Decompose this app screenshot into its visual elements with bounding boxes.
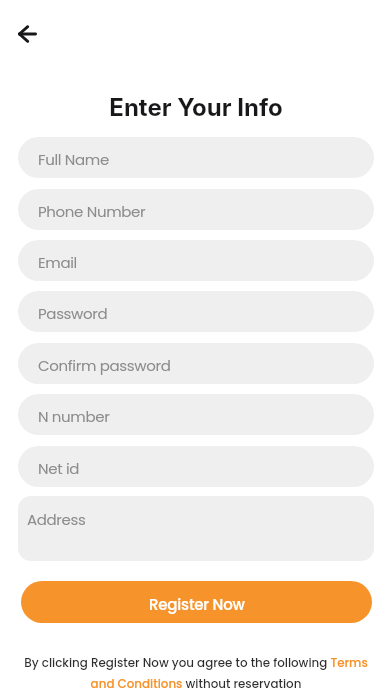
staticText: Net id	[38, 458, 80, 479]
staticText: N number	[38, 406, 110, 427]
staticText: Register Now	[149, 594, 245, 615]
staticText: Confirm password	[38, 355, 171, 376]
button[interactable]: N number	[18, 394, 374, 435]
button[interactable]: Email	[18, 240, 374, 281]
staticText: Enter Your Info	[0, 93, 392, 122]
staticText: Phone Number	[38, 201, 146, 222]
button[interactable]: Phone Number	[18, 189, 374, 230]
staticText: Full Name	[38, 149, 109, 170]
staticText: Password	[38, 303, 108, 324]
button[interactable]: Full Name	[18, 137, 374, 178]
button[interactable]: Address	[18, 496, 374, 561]
staticText: Address	[27, 509, 86, 530]
button[interactable]: Register Now	[21, 581, 372, 623]
staticText: Email	[38, 252, 77, 273]
button[interactable]: Password	[18, 291, 374, 332]
button[interactable]: Net id	[18, 446, 374, 487]
button[interactable]: Confirm password	[18, 343, 374, 384]
button[interactable]: Back	[7, 13, 48, 54]
staticText: By clicking Register Now you agree to th…	[18, 655, 374, 692]
